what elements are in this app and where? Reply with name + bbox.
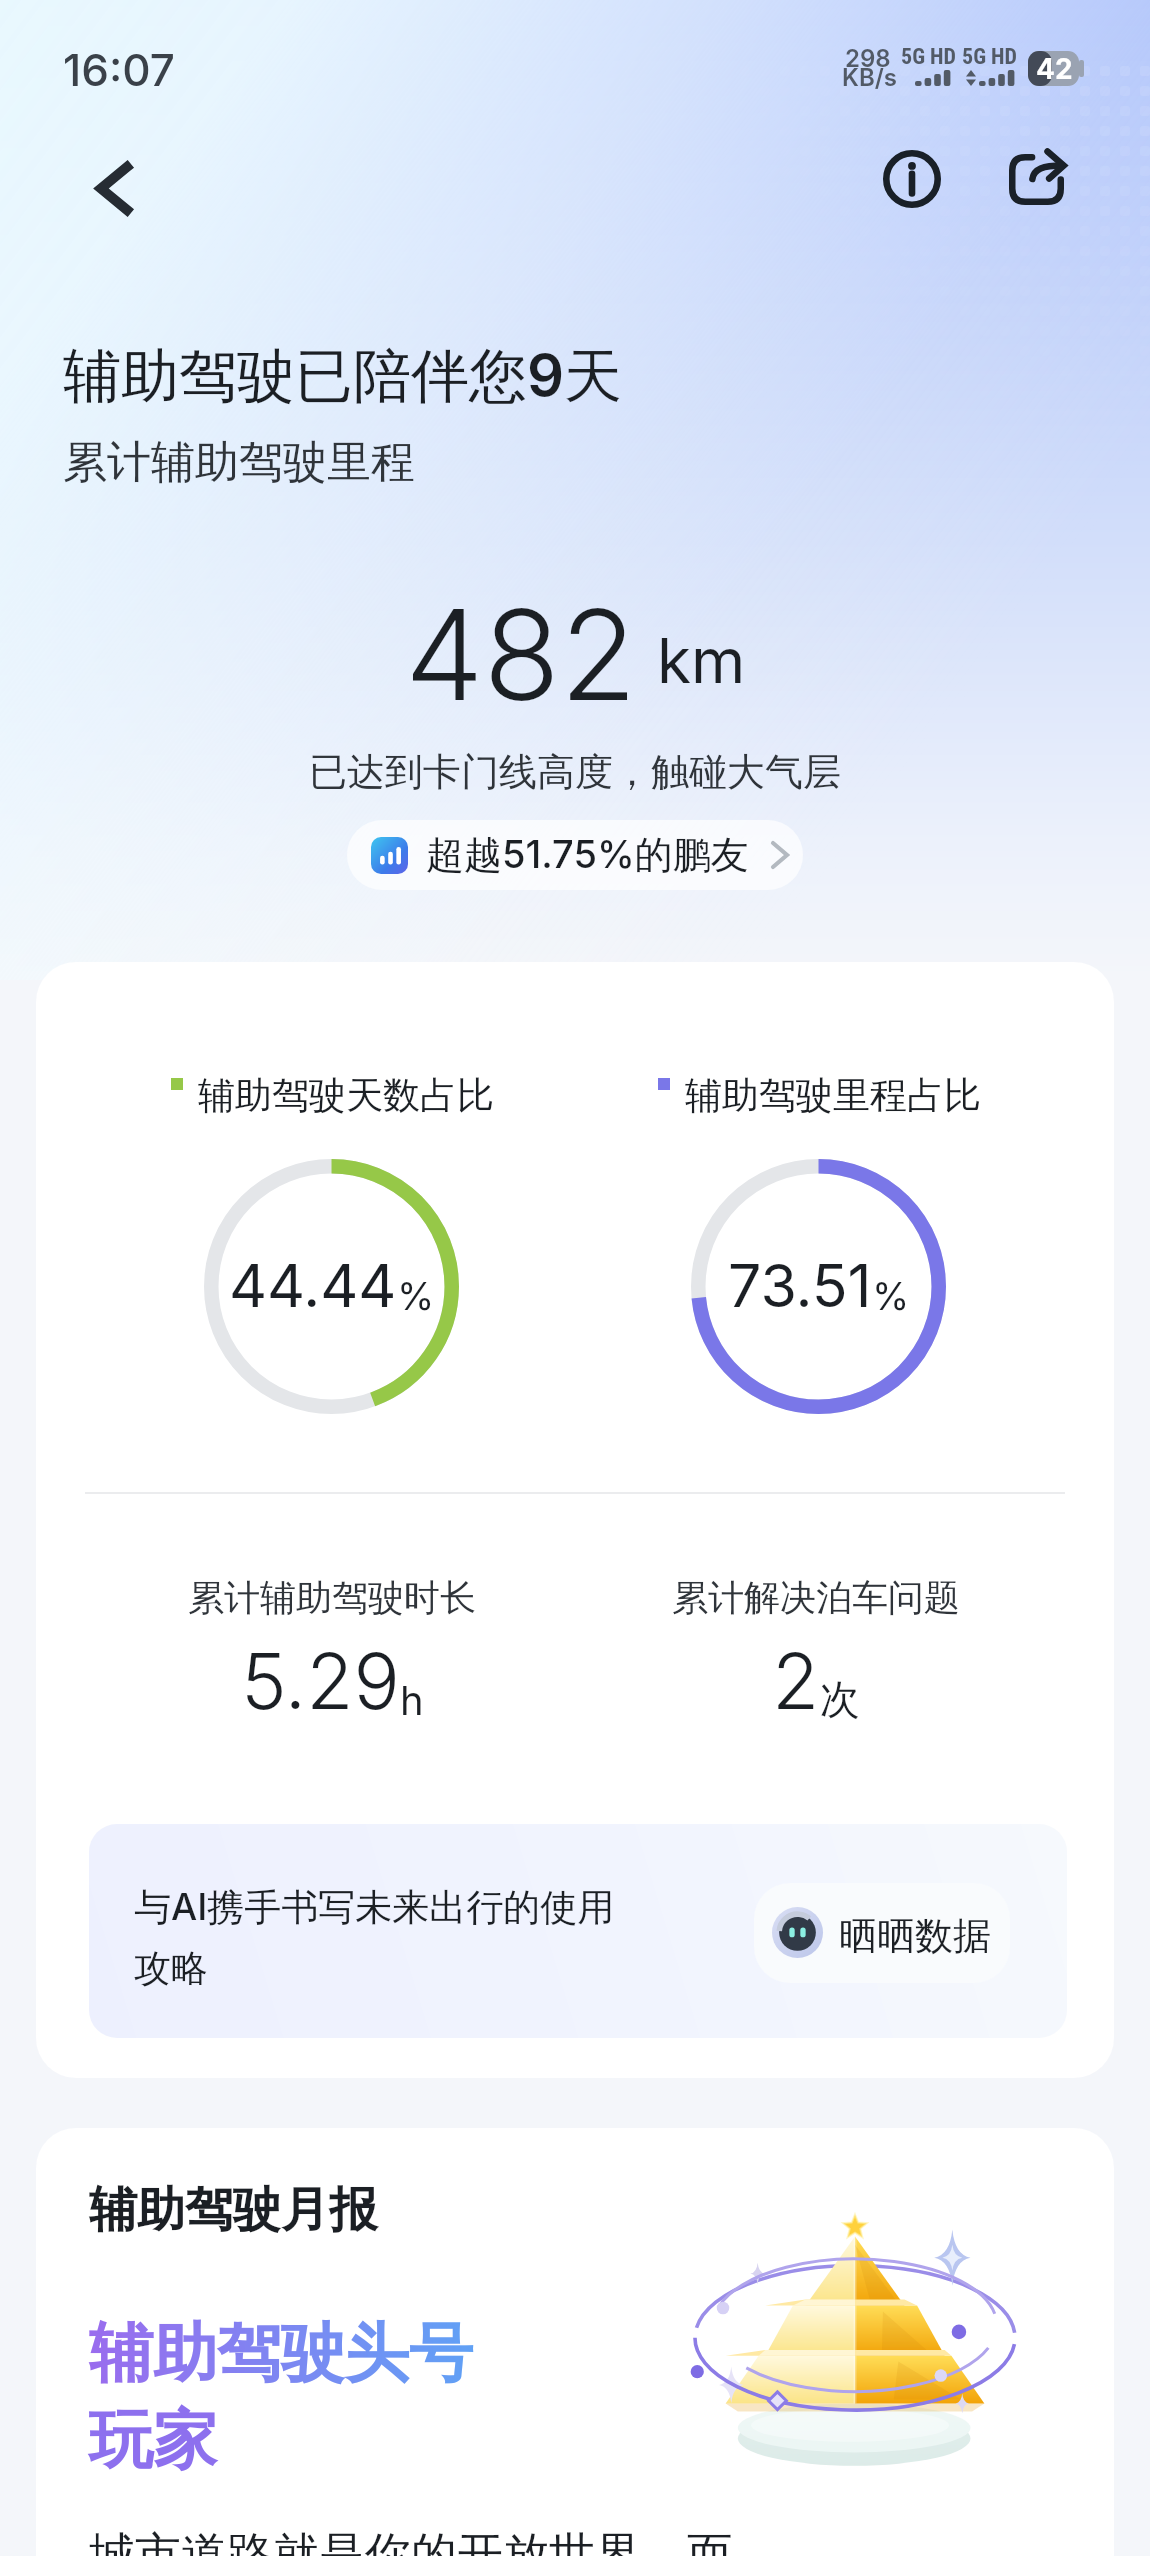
staticText: 与AI携手书写未来出行的使用攻略 [134, 1884, 634, 1992]
staticText: 玩家 [89, 2400, 217, 2481]
staticText: 辅助驾驶天数占比 [198, 1072, 494, 1119]
button[interactable]: Back [78, 152, 150, 224]
staticText: 晒晒数据 [839, 1912, 991, 1960]
staticText: h [400, 1676, 424, 1724]
button[interactable]: Info [876, 143, 948, 215]
staticText: 辅助驾驶里程占比 [685, 1072, 981, 1119]
staticText: 42 [1036, 52, 1073, 86]
staticText: 超越51.75%的鹏友 [426, 831, 749, 879]
staticText: 辅助驾驶头号 [89, 2313, 473, 2394]
staticText: 16:07 [63, 43, 175, 96]
staticText: 44.44 [229, 1250, 397, 1321]
button[interactable]: 晒晒数据 [754, 1883, 1010, 1983]
button[interactable]: 超越51.75%的鹏友 [347, 820, 803, 890]
button[interactable]: Share [998, 143, 1074, 215]
staticText: KB/s [842, 63, 897, 92]
staticText: 已达到卡门线高度，触碰大气层 [0, 748, 1150, 796]
staticText: 2 [772, 1634, 820, 1727]
staticText: 累计辅助驾驶时长 [188, 1575, 476, 1620]
staticText: 73.51 [728, 1250, 872, 1321]
staticText: 城市道路就是你的开放世界，而 [89, 2526, 733, 2556]
staticText: 5G HD [962, 44, 1018, 70]
staticText: 累计辅助驾驶里程 [63, 435, 415, 490]
staticText: 5.29 [241, 1634, 400, 1727]
staticText: % [397, 1273, 435, 1319]
staticText: 累计解决泊车问题 [672, 1575, 960, 1620]
staticText: 482 [405, 579, 637, 730]
staticText: % [872, 1273, 910, 1319]
staticText: 5G HD [901, 44, 957, 70]
staticText: 次 [820, 1674, 860, 1724]
staticText: km [657, 623, 746, 698]
staticText: 298 [845, 44, 891, 73]
staticText: 辅助驾驶月报 [89, 2180, 377, 2240]
staticText: 辅助驾驶已陪伴您9天 [63, 340, 623, 413]
